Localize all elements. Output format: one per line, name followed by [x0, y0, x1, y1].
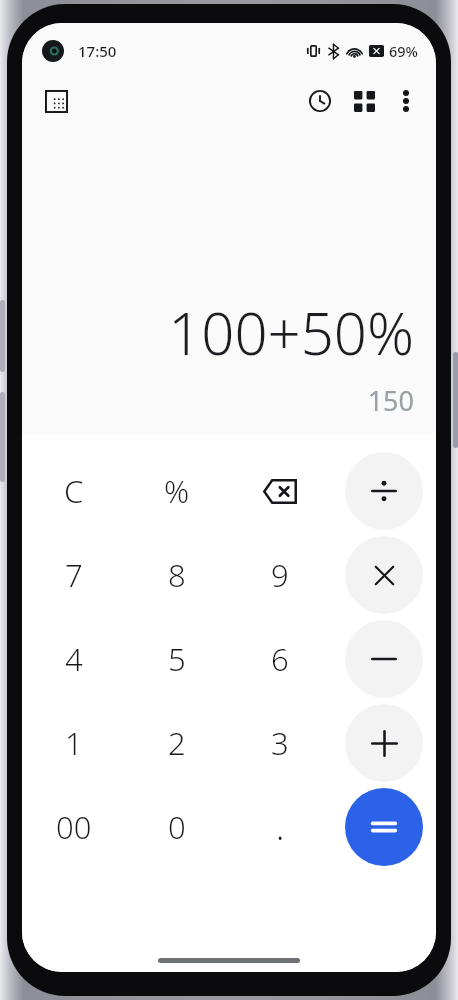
- button[interactable]: 2: [125, 701, 228, 785]
- button[interactable]: %: [125, 449, 228, 533]
- staticText: 8: [168, 554, 186, 596]
- button[interactable]: 7: [22, 533, 125, 617]
- button[interactable]: Converters: [342, 79, 386, 123]
- staticText: 9: [271, 554, 289, 596]
- button[interactable]: Multiply: [345, 536, 423, 614]
- staticText: 2: [168, 722, 186, 764]
- button[interactable]: Minus: [345, 620, 423, 698]
- staticText: 150: [367, 382, 414, 419]
- button[interactable]: Plus: [345, 704, 423, 782]
- staticText: 00: [56, 806, 92, 848]
- staticText: .: [276, 804, 285, 850]
- button[interactable]: C: [22, 449, 125, 533]
- button[interactable]: 0: [125, 785, 228, 869]
- button[interactable]: 5: [125, 617, 228, 701]
- staticText: 0: [168, 806, 186, 848]
- button[interactable]: Equals: [345, 788, 423, 866]
- button[interactable]: 4: [22, 617, 125, 701]
- staticText: %: [164, 470, 190, 512]
- button[interactable]: Scientific keypad: [34, 79, 78, 123]
- button[interactable]: Divide: [345, 452, 423, 530]
- button[interactable]: History: [298, 79, 342, 123]
- staticText: 1: [65, 722, 83, 764]
- button[interactable]: 3: [228, 701, 332, 785]
- button[interactable]: 00: [22, 785, 125, 869]
- staticText: 17:50: [78, 41, 117, 61]
- staticText: 7: [65, 554, 83, 596]
- button[interactable]: More options: [386, 81, 426, 121]
- button[interactable]: 9: [228, 533, 332, 617]
- button[interactable]: Backspace: [228, 449, 332, 533]
- button[interactable]: .: [228, 785, 332, 869]
- button[interactable]: 8: [125, 533, 228, 617]
- staticText: C: [64, 470, 84, 512]
- button[interactable]: 6: [228, 617, 332, 701]
- staticText: 69%: [389, 41, 418, 61]
- staticText: 4: [65, 638, 83, 680]
- staticText: 100+50%: [168, 293, 414, 372]
- staticText: 3: [271, 722, 289, 764]
- button[interactable]: 1: [22, 701, 125, 785]
- staticText: 6: [271, 638, 289, 680]
- staticText: 5: [168, 638, 186, 680]
